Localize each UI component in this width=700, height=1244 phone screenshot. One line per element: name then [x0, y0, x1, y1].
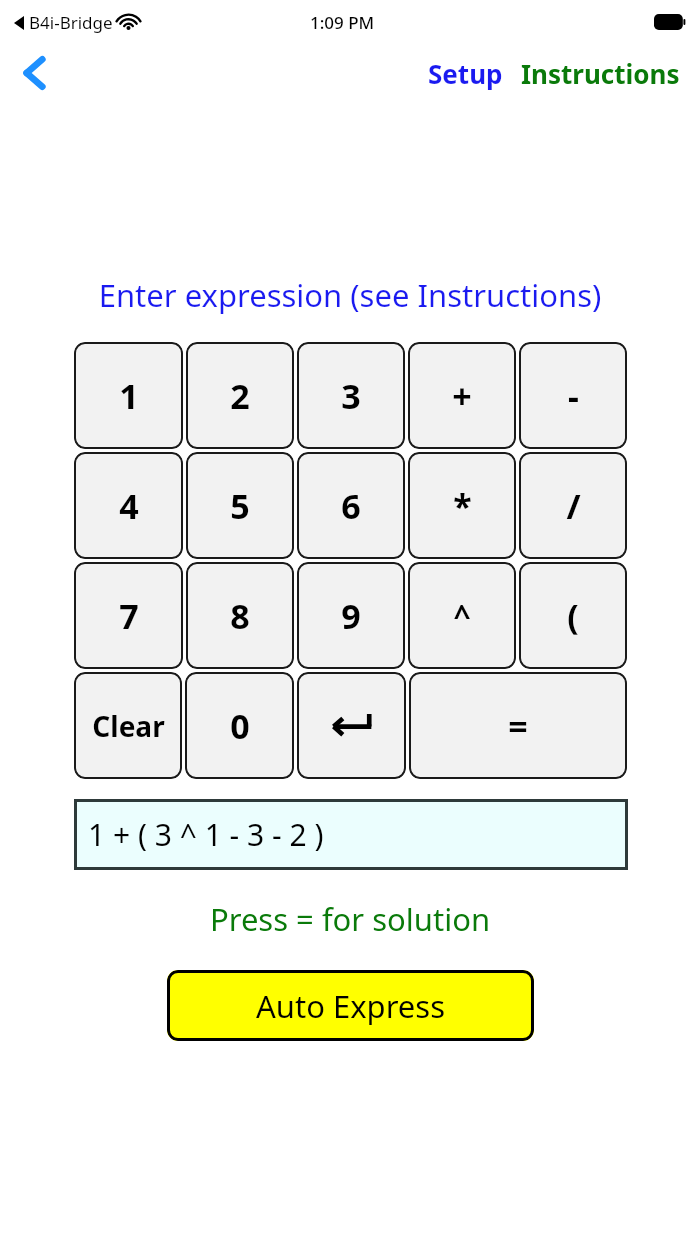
staticText: 3 [341, 373, 361, 419]
button[interactable]: Enter [297, 672, 406, 779]
button[interactable]: 0 [185, 672, 294, 779]
button[interactable]: Auto Express [167, 970, 534, 1041]
button[interactable]: 1 + ( 3 ^ 1 - 3 - 2 ) [74, 799, 628, 870]
staticText: / [566, 483, 581, 529]
button[interactable]: 8 [186, 562, 294, 669]
button[interactable]: Divide [519, 452, 627, 559]
button[interactable]: Instructions [517, 50, 684, 97]
staticText: Clear [92, 707, 165, 745]
button[interactable]: Clear [74, 672, 182, 779]
button[interactable]: 1 [74, 342, 183, 449]
staticText: * [453, 483, 472, 529]
button[interactable]: 9 [297, 562, 405, 669]
staticText: 1 + ( 3 ^ 1 - 3 - 2 ) [88, 814, 324, 855]
button[interactable]: 6 [297, 452, 405, 559]
staticText: ^ [453, 595, 471, 636]
button[interactable]: 7 [74, 562, 183, 669]
staticText: ( [567, 593, 579, 639]
button[interactable]: Setup [424, 50, 507, 97]
button[interactable]: Power [408, 562, 516, 669]
staticText: 8 [230, 593, 250, 639]
staticText: 2 [230, 373, 250, 419]
button[interactable]: Minus [519, 342, 627, 449]
staticText: - [568, 373, 579, 419]
staticText: Instructions [521, 56, 680, 91]
staticText: Press = for solution [0, 898, 700, 940]
staticText: 6 [341, 483, 361, 529]
staticText: B4i-Bridge [29, 11, 113, 34]
button[interactable]: Equals [409, 672, 627, 779]
button[interactable]: 5 [186, 452, 294, 559]
button[interactable]: Enter expression (see Instructions) [0, 274, 700, 316]
staticText: 9 [341, 593, 361, 639]
staticText: 7 [119, 593, 139, 639]
staticText: = [508, 703, 528, 749]
staticText: Setup [428, 56, 503, 91]
staticText: 0 [230, 703, 250, 749]
button[interactable]: Plus [408, 342, 516, 449]
staticText: + [452, 373, 472, 419]
staticText: 5 [230, 483, 250, 529]
button[interactable]: Multiply [408, 452, 516, 559]
staticText: Auto Express [256, 985, 446, 1027]
button[interactable]: Open parenthesis [519, 562, 627, 669]
button[interactable]: 4 [74, 452, 183, 559]
staticText: 1:09 PM [310, 11, 375, 34]
staticText: 4 [119, 483, 139, 529]
button[interactable]: 2 [186, 342, 294, 449]
button[interactable]: 3 [297, 342, 405, 449]
button[interactable]: Back [12, 51, 56, 95]
staticText: 1 [119, 373, 139, 419]
